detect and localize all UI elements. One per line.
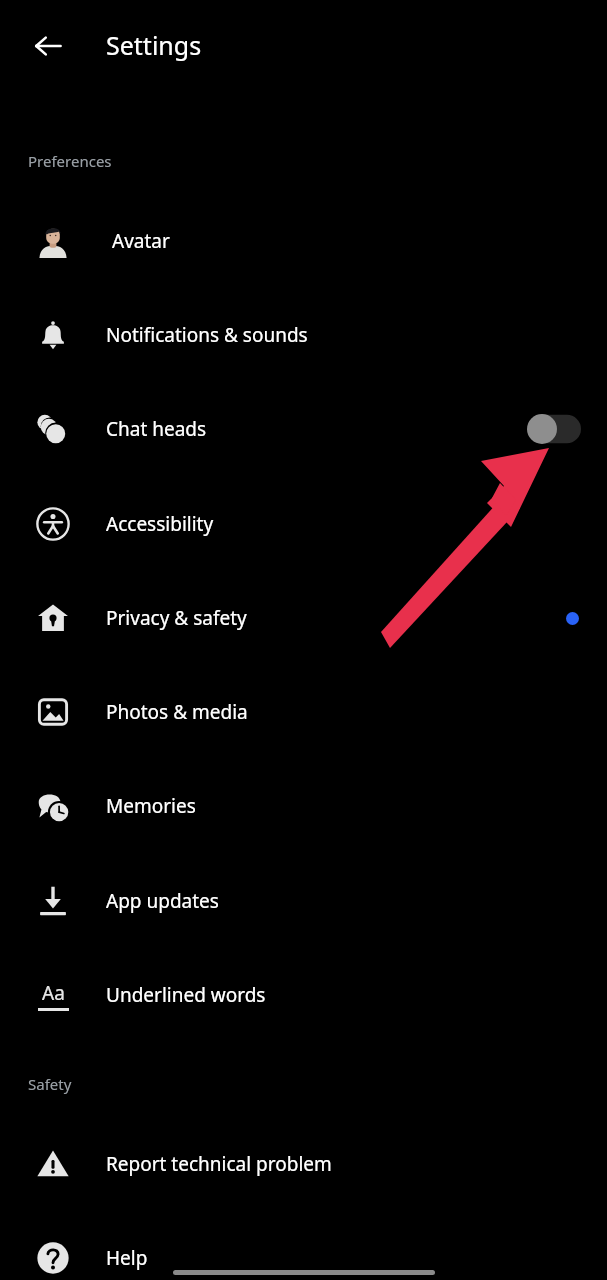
button[interactable]: Notifications & sounds xyxy=(0,288,607,382)
button[interactable]: Chat heads toggle xyxy=(527,414,581,444)
staticText: Help xyxy=(106,1245,148,1271)
button[interactable]: Memories xyxy=(0,759,607,853)
button[interactable]: Report technical problem xyxy=(0,1117,607,1211)
button[interactable]: Avatar xyxy=(0,194,607,288)
staticText: Avatar xyxy=(112,228,170,254)
button[interactable]: Help xyxy=(0,1211,607,1280)
button[interactable]: App updates xyxy=(0,854,607,948)
staticText: Report technical problem xyxy=(106,1151,332,1177)
staticText: Aa xyxy=(42,980,65,1006)
staticText: Settings xyxy=(106,28,202,62)
button[interactable]: Back xyxy=(22,20,74,72)
button[interactable]: Aa xyxy=(0,948,607,1042)
staticText: Notifications & sounds xyxy=(106,322,308,348)
staticText: Accessibility xyxy=(106,511,214,537)
staticText: Preferences xyxy=(28,151,112,171)
button[interactable]: Accessibility xyxy=(0,477,607,571)
staticText: Photos & media xyxy=(106,699,248,725)
staticText: Memories xyxy=(106,793,196,819)
staticText: Privacy & safety xyxy=(106,605,247,631)
button[interactable]: Chat heads xyxy=(0,382,607,476)
button[interactable]: Photos & media xyxy=(0,665,607,759)
staticText: App updates xyxy=(106,888,219,914)
button[interactable]: Privacy & safety xyxy=(0,571,607,665)
staticText: Safety xyxy=(28,1074,72,1094)
staticText: Chat heads xyxy=(106,416,207,442)
staticText: Underlined words xyxy=(106,982,266,1008)
